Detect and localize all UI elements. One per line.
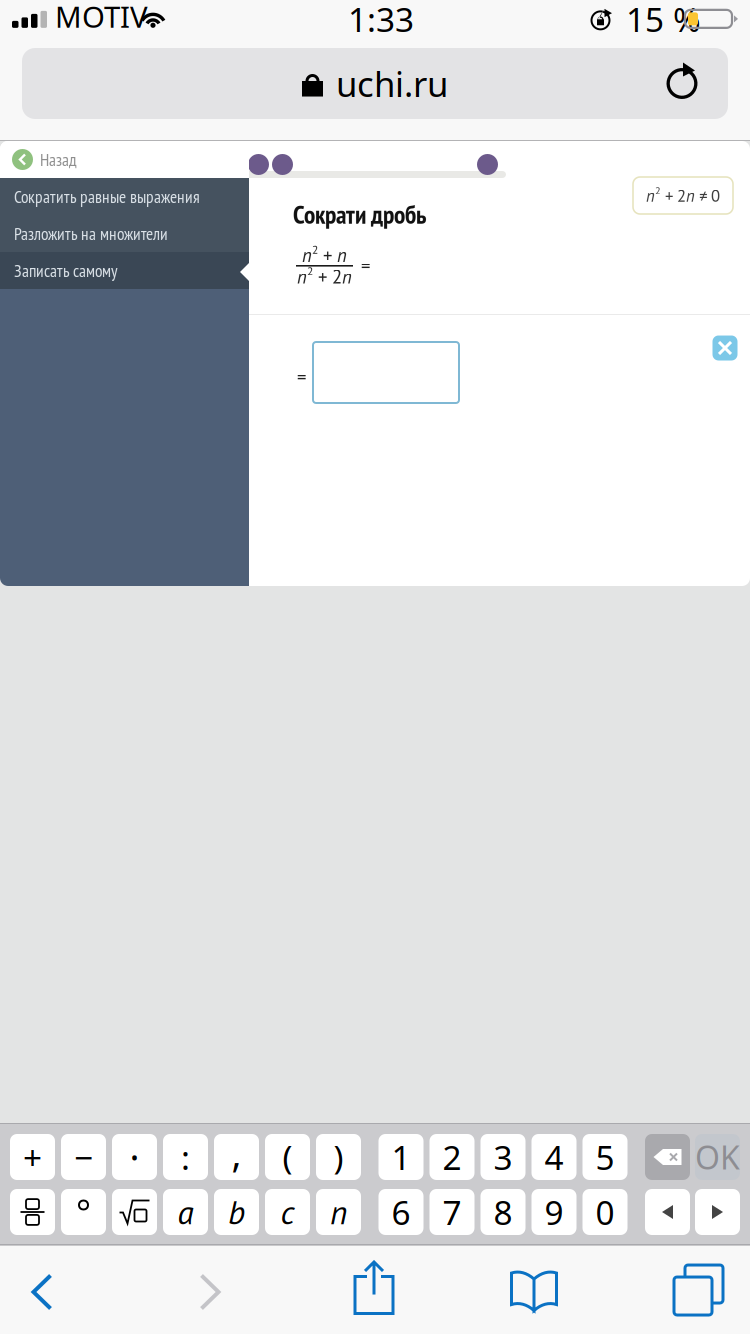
staticText: 8: [493, 1190, 512, 1234]
button[interactable]: Move left: [645, 1189, 690, 1235]
staticText: 2: [312, 242, 318, 257]
staticText: 2: [307, 263, 313, 278]
staticText: 0: [595, 1190, 614, 1234]
staticText: 1: [391, 1135, 410, 1179]
button[interactable]: Degree: [61, 1189, 106, 1235]
staticText: :: [181, 1135, 190, 1179]
staticText: (: [282, 1135, 292, 1179]
button[interactable]: ): [316, 1134, 361, 1180]
staticText: 5: [595, 1135, 614, 1179]
staticText: 9: [544, 1190, 563, 1234]
staticText: b: [228, 1190, 245, 1233]
button[interactable]: Записать самому: [0, 252, 249, 289]
staticText: ·: [129, 1132, 139, 1182]
button[interactable]: +: [10, 1134, 55, 1180]
staticText: +: [318, 243, 337, 267]
button[interactable]: Разложить на множители: [0, 215, 249, 252]
staticText: 2: [442, 1135, 461, 1179]
button[interactable]: Tabs: [660, 1246, 726, 1334]
button[interactable]: Forward: [178, 1246, 244, 1334]
button[interactable]: c: [265, 1189, 310, 1235]
staticText: a: [177, 1190, 193, 1233]
button[interactable]: 2: [429, 1134, 474, 1180]
button[interactable]: Close: [703, 326, 747, 370]
staticText: 15 %: [626, 0, 701, 41]
button[interactable]: 4: [531, 1134, 576, 1180]
button[interactable]: Сократить равные выражения: [0, 178, 249, 215]
staticText: −: [74, 1135, 93, 1179]
staticText: =: [297, 365, 306, 389]
button[interactable]: Reload: [649, 50, 715, 116]
button[interactable]: Share: [341, 1246, 407, 1334]
staticText: 3: [493, 1135, 512, 1179]
staticText: ≠ 0: [695, 185, 720, 206]
staticText: 2: [655, 184, 661, 197]
button[interactable]: 5: [582, 1134, 627, 1180]
button[interactable]: :: [163, 1134, 208, 1180]
staticText: n: [330, 1190, 347, 1233]
button[interactable]: Move right: [695, 1189, 740, 1235]
staticText: + 2: [661, 185, 686, 206]
staticText: Сократи дробь: [293, 198, 426, 231]
button[interactable]: Bookmarks: [501, 1246, 567, 1334]
button[interactable]: Fraction: [10, 1189, 55, 1235]
staticText: n: [342, 264, 352, 289]
staticText: 6: [391, 1190, 410, 1234]
staticText: ): [333, 1135, 343, 1179]
button[interactable]: b: [214, 1189, 259, 1235]
button[interactable]: (: [265, 1134, 310, 1180]
button[interactable]: Back: [10, 1246, 76, 1334]
staticText: MOTIV: [55, 0, 148, 36]
staticText: 1:33: [348, 0, 414, 41]
staticText: + 2: [313, 264, 342, 289]
button[interactable]: 8: [480, 1189, 525, 1235]
staticText: n: [302, 243, 312, 267]
staticText: n: [686, 185, 695, 206]
button[interactable]: Square root: [112, 1189, 157, 1235]
staticText: Разложить на множители: [14, 222, 168, 245]
staticText: n: [297, 264, 307, 289]
staticText: c: [280, 1190, 294, 1233]
staticText: Записать самому: [14, 259, 118, 282]
button[interactable]: 9: [531, 1189, 576, 1235]
button[interactable]: 0: [582, 1189, 627, 1235]
button[interactable]: a: [163, 1189, 208, 1235]
button[interactable]: 3: [480, 1134, 525, 1180]
staticText: n: [646, 185, 655, 206]
staticText: uchi.ru: [336, 60, 448, 106]
button[interactable]: 7: [429, 1189, 474, 1235]
staticText: +: [23, 1135, 42, 1179]
staticText: 7: [442, 1190, 461, 1234]
button[interactable]: ·: [112, 1134, 157, 1180]
button[interactable]: −: [61, 1134, 106, 1180]
staticText: 4: [544, 1135, 563, 1179]
staticText: Сократить равные выражения: [14, 185, 200, 208]
staticText: OK: [695, 1136, 740, 1178]
staticText: n: [337, 243, 347, 267]
button[interactable]: n: [316, 1189, 361, 1235]
staticText: Назад: [40, 148, 77, 171]
button[interactable]: ,: [214, 1134, 259, 1180]
staticText: ,: [231, 1128, 241, 1178]
button[interactable]: 1: [378, 1134, 423, 1180]
button[interactable]: 6: [378, 1189, 423, 1235]
button[interactable]: uchi.ru: [22, 48, 728, 119]
button[interactable]: Delete: [645, 1134, 690, 1180]
button[interactable]: Назад: [0, 141, 249, 178]
staticText: =: [361, 254, 370, 278]
button[interactable]: OK: [695, 1134, 740, 1180]
